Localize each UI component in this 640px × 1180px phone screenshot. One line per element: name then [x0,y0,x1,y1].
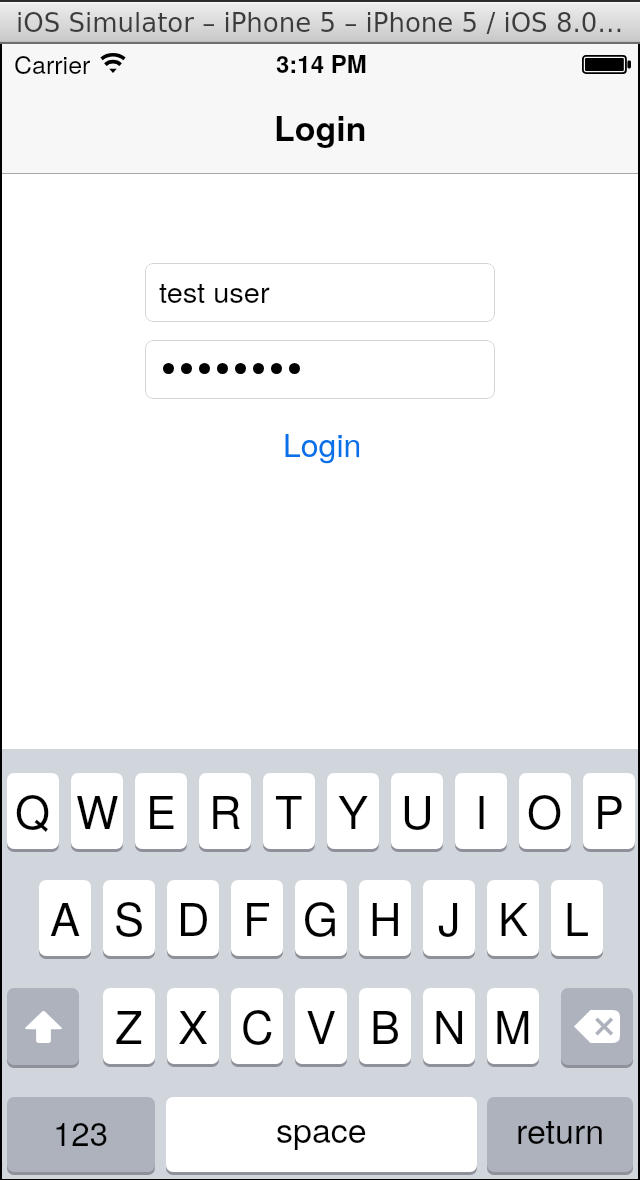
staticText: M [494,992,532,1056]
button[interactable]: K [487,880,539,956]
staticText: G [303,884,339,948]
staticText: iOS Simulator – iPhone 5 – iPhone 5 / iO… [16,8,624,38]
button[interactable]: H [359,880,411,956]
staticText: V [306,992,337,1056]
staticText: Login [283,420,362,466]
other: Wi-Fi signal [101,54,125,73]
button[interactable]: N [423,988,475,1064]
button[interactable]: I [455,773,507,849]
button[interactable] [145,340,495,399]
staticText: R [209,777,242,841]
staticText: P [594,777,625,841]
button[interactable]: G [295,880,347,956]
staticText: Login [274,103,367,152]
button[interactable]: Y [327,773,379,849]
staticText: E [146,777,177,841]
staticText: L [564,884,590,948]
button[interactable]: Number keyboard [7,1097,155,1172]
staticText: 123 [53,1108,109,1155]
staticText: F [243,884,271,948]
staticText: W [76,777,119,841]
button[interactable]: W [71,773,123,849]
button[interactable]: T [263,773,315,849]
staticText: return [516,1105,605,1154]
button[interactable]: D [167,880,219,956]
button[interactable]: space [166,1097,477,1172]
staticText: D [177,884,210,948]
staticText: Carrier [14,45,91,81]
staticText: test user [159,270,270,312]
staticText: space [276,1104,367,1153]
button[interactable]: U [391,773,443,849]
button[interactable]: P [583,773,635,849]
staticText: X [178,992,209,1056]
staticText: B [370,992,401,1056]
button[interactable]: V [295,988,347,1064]
button[interactable]: O [519,773,571,849]
staticText: Q [15,777,51,841]
button[interactable]: A [39,880,91,956]
staticText: A [50,884,81,948]
staticText: K [498,884,529,948]
button[interactable]: test user [145,263,495,322]
staticText: N [433,992,466,1056]
button[interactable]: Shift [7,988,79,1065]
button[interactable]: B [359,988,411,1064]
button[interactable]: L [551,880,603,956]
other: Battery full [582,55,631,74]
staticText: S [114,884,145,948]
button[interactable]: J [423,880,475,956]
staticText: 3:14 PM [276,46,367,80]
staticText: Y [338,777,369,841]
button[interactable]: S [103,880,155,956]
button[interactable]: Q [7,773,59,849]
button[interactable]: R [199,773,251,849]
button[interactable]: C [231,988,283,1064]
button[interactable]: Z [103,988,155,1064]
staticText: C [241,992,274,1056]
staticText: Z [115,992,143,1056]
button[interactable]: F [231,880,283,956]
button[interactable]: Return [487,1097,633,1172]
staticText: U [401,777,434,841]
staticText: H [369,884,402,948]
staticText: J [438,884,461,948]
button[interactable]: M [487,988,539,1064]
staticText: T [275,777,303,841]
staticText: O [527,777,563,841]
button[interactable]: E [135,773,187,849]
staticText: I [475,777,488,841]
button[interactable]: Login [148,418,497,468]
button[interactable]: X [167,988,219,1064]
button[interactable]: Backspace [561,988,633,1065]
